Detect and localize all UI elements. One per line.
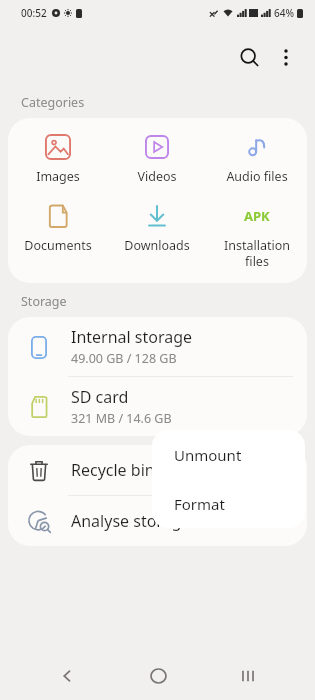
button[interactable]: Home [134,652,182,700]
staticText: Analyse storage [71,510,191,532]
staticText: Categories [21,94,85,111]
button[interactable]: Back [43,652,91,700]
button[interactable]: Analyse storage [8,496,307,546]
staticText: Videos [137,168,177,185]
button[interactable]: Recycle bin [8,445,307,495]
button[interactable]: Unmount [152,430,305,479]
staticText: 00:52 [21,6,47,20]
button[interactable]: Documents [8,197,107,258]
staticText: Downloads [124,237,190,254]
button[interactable]: Images [8,128,107,189]
staticText: 321 MB / 14.6 GB [71,410,172,427]
button[interactable]: Search [229,37,269,77]
button[interactable]: APK [207,197,307,273]
staticText: Images [36,168,80,185]
button[interactable]: Downloads [107,197,207,258]
button[interactable]: Videos [107,128,207,189]
button[interactable]: Audio files [207,128,307,189]
button[interactable]: SD card [8,377,307,436]
staticText: Audio files [226,168,288,185]
staticText: Unmount [174,445,242,465]
staticText: APK [244,207,270,225]
staticText: Installation files [224,237,290,269]
staticText: SD card [71,386,129,408]
button[interactable]: Format [152,479,305,528]
staticText: Documents [24,237,92,254]
staticText: Format [174,494,225,514]
staticText: Recycle bin [71,459,155,481]
staticText: 64% [274,6,294,20]
staticText: 49.00 GB / 128 GB [71,350,177,367]
staticText: Storage [21,293,67,310]
button[interactable]: Internal storage [8,317,307,376]
staticText: Internal storage [71,326,193,348]
button[interactable]: Recent apps [224,652,272,700]
button[interactable]: More options [269,40,303,74]
